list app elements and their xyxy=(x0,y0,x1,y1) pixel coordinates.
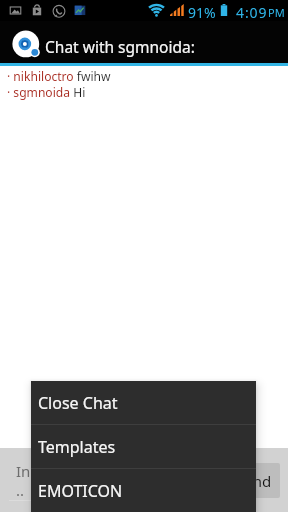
button[interactable]: Send xyxy=(227,463,280,498)
staticText: · sgmnoida Hi xyxy=(7,84,288,100)
staticText: 91% xyxy=(188,3,216,22)
button[interactable]: Templates xyxy=(31,425,256,468)
staticText: EMOTICON xyxy=(38,480,123,502)
staticText: Close Chat xyxy=(38,392,118,414)
staticText: Input Text Here .. xyxy=(16,461,125,500)
staticText: Templates xyxy=(38,436,116,458)
staticText: 4:09 xyxy=(236,3,268,22)
staticText: Chat with sgmnoida: xyxy=(45,36,195,57)
button[interactable]: EMOTICON xyxy=(31,469,256,512)
staticText: · nikhiloctro fwihw xyxy=(7,68,288,84)
staticText: PM xyxy=(268,5,285,20)
button[interactable]: Input Text Here .. xyxy=(9,452,223,506)
button[interactable]: Close Chat xyxy=(31,381,256,424)
button[interactable]: Chat with sgmnoida xyxy=(0,21,288,63)
staticText: Send xyxy=(236,471,272,491)
